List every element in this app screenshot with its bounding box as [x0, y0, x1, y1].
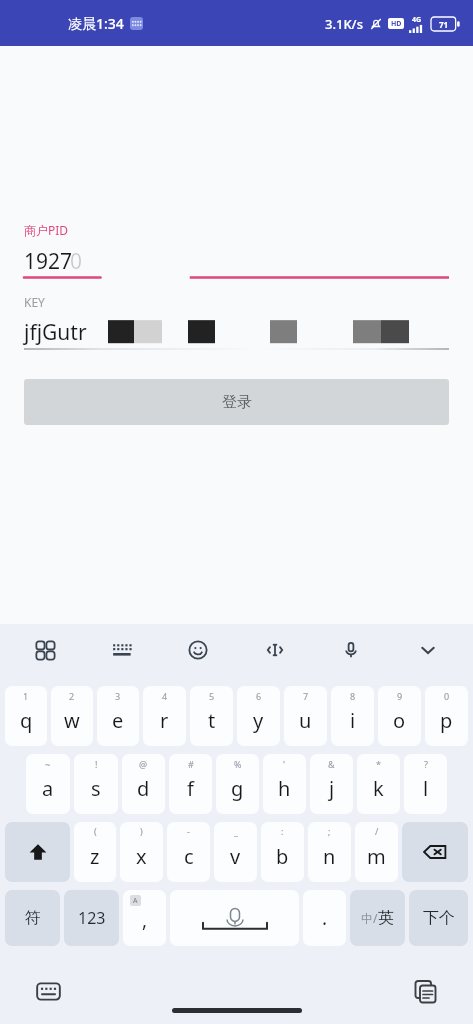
button[interactable]: Emoji: [181, 633, 215, 667]
staticText: 0: [444, 690, 450, 702]
button[interactable]: 6: [237, 686, 280, 746]
staticText: HD: [391, 19, 402, 29]
staticText: p: [440, 707, 453, 734]
staticText: *: [376, 758, 381, 770]
button[interactable]: :: [261, 822, 304, 882]
button[interactable]: #: [169, 754, 212, 814]
button[interactable]: ?: [404, 754, 447, 814]
staticText: :: [281, 825, 284, 837]
staticText: 下个: [423, 908, 455, 928]
button[interactable]: @: [122, 754, 165, 814]
button[interactable]: Space: [170, 890, 299, 946]
staticText: n: [323, 843, 336, 870]
button[interactable]: /: [355, 822, 398, 882]
staticText: u: [299, 707, 312, 734]
staticText: 71: [439, 19, 449, 30]
staticText: t: [208, 707, 216, 734]
button[interactable]: 2: [51, 686, 93, 746]
staticText: f: [187, 775, 194, 802]
staticText: ~: [45, 758, 51, 770]
button[interactable]: %: [216, 754, 259, 814]
button[interactable]: -: [167, 822, 210, 882]
button[interactable]: .: [303, 890, 346, 946]
staticText: 8: [350, 690, 356, 702]
staticText: ): [140, 825, 143, 837]
staticText: (: [94, 825, 97, 837]
button[interactable]: (: [74, 822, 116, 882]
button[interactable]: 5: [190, 686, 233, 746]
staticText: 2: [69, 690, 75, 702]
button[interactable]: 登录: [24, 379, 449, 425]
staticText: 1: [23, 690, 29, 702]
button[interactable]: _: [214, 822, 257, 882]
button[interactable]: !: [74, 754, 118, 814]
staticText: ;: [328, 825, 331, 837]
staticText: w: [64, 707, 80, 734]
staticText: &: [328, 758, 335, 770]
staticText: e: [112, 707, 124, 734]
button[interactable]: Text cursor: [258, 633, 292, 667]
button[interactable]: Shift: [5, 822, 70, 882]
button[interactable]: 3: [97, 686, 139, 746]
staticText: ?: [424, 758, 428, 770]
staticText: r: [160, 707, 169, 734]
button[interactable]: A: [123, 890, 166, 946]
staticText: d: [137, 775, 150, 802]
staticText: y: [253, 707, 264, 734]
button[interactable]: Apps: [28, 633, 62, 667]
staticText: j: [329, 775, 335, 802]
button[interactable]: Clipboard: [407, 973, 443, 1009]
staticText: 中/: [361, 910, 378, 926]
staticText: #: [188, 758, 194, 770]
button[interactable]: Keyboard layout: [105, 633, 139, 667]
staticText: _: [234, 825, 238, 837]
staticText: 123: [78, 907, 106, 929]
button[interactable]: Backspace: [402, 822, 468, 882]
staticText: 英: [378, 908, 394, 928]
staticText: @: [139, 758, 148, 770]
staticText: q: [20, 707, 33, 734]
staticText: s: [91, 775, 101, 802]
button[interactable]: 0: [425, 686, 468, 746]
button[interactable]: Switch keyboard: [30, 973, 66, 1009]
button[interactable]: ): [120, 822, 163, 882]
staticText: 4: [162, 690, 168, 702]
button[interactable]: *: [357, 754, 400, 814]
staticText: 登录: [222, 393, 252, 412]
staticText: -: [187, 825, 190, 837]
staticText: 6: [256, 690, 262, 702]
button[interactable]: 4: [143, 686, 186, 746]
staticText: 5: [209, 690, 215, 702]
button[interactable]: 9: [378, 686, 421, 746]
staticText: .: [322, 905, 328, 931]
button[interactable]: ;: [308, 822, 351, 882]
button[interactable]: 7: [284, 686, 327, 746]
staticText: 0: [70, 247, 83, 276]
button[interactable]: 123: [64, 890, 119, 946]
staticText: 商户PID: [24, 222, 69, 238]
button[interactable]: Voice input: [334, 633, 368, 667]
button[interactable]: 1: [5, 686, 47, 746]
button[interactable]: ~: [26, 754, 70, 814]
staticText: 4G: [412, 15, 422, 25]
button[interactable]: &: [310, 754, 353, 814]
staticText: v: [230, 843, 241, 870]
staticText: i: [350, 707, 356, 734]
staticText: o: [393, 707, 406, 734]
button[interactable]: 中/: [350, 890, 405, 946]
staticText: 3.1K/s: [325, 15, 363, 33]
button[interactable]: 符: [5, 890, 60, 946]
staticText: !: [95, 758, 98, 770]
staticText: x: [136, 843, 147, 870]
button[interactable]: 8: [331, 686, 374, 746]
staticText: 3: [115, 690, 121, 702]
staticText: h: [278, 775, 291, 802]
staticText: l: [423, 775, 429, 802]
staticText: g: [231, 775, 244, 802]
staticText: 9: [397, 690, 403, 702]
staticText: jfjGutr: [24, 318, 87, 347]
button[interactable]: Hide keyboard: [411, 633, 445, 667]
button[interactable]: 下个: [409, 890, 468, 946]
staticText: a: [42, 775, 54, 802]
button[interactable]: ': [263, 754, 306, 814]
